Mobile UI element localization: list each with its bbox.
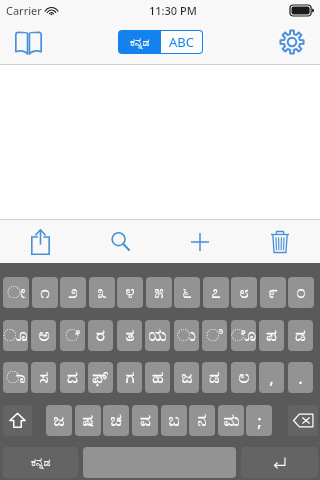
button[interactable]: ಚ [103, 405, 129, 436]
button[interactable]: ; [246, 405, 272, 436]
staticText: ಪ [266, 327, 277, 344]
button[interactable]: ೧ [32, 277, 58, 308]
staticText: ೬ [182, 284, 192, 301]
button[interactable]: ೊ [231, 320, 256, 351]
staticText: ಚ [110, 412, 122, 429]
staticText: ೊ [231, 327, 256, 344]
button[interactable]: ಷ [75, 405, 101, 436]
staticText: ೭ [211, 284, 221, 301]
staticText: . [298, 366, 303, 389]
button[interactable]: ಗ [117, 362, 142, 393]
button[interactable]: ೕ [3, 277, 29, 308]
button[interactable]: Dictionary [6, 20, 50, 64]
button[interactable]: ೪ [117, 277, 143, 308]
button[interactable]: ೬ [174, 277, 200, 308]
button[interactable]: ೆ [60, 320, 85, 351]
button[interactable]: ೦ [288, 277, 314, 308]
staticText: ಾ [6, 369, 26, 386]
staticText: Carrier [6, 3, 42, 18]
button[interactable]: ಫ್ [88, 362, 113, 393]
button[interactable]: ೨ [60, 277, 86, 308]
staticText: ಫ್ [92, 369, 109, 386]
button[interactable]: Search [80, 220, 160, 263]
button[interactable]: ೫ [146, 277, 172, 308]
button[interactable]: ರ [88, 320, 113, 351]
staticText: ಕನ್ನಡ [130, 37, 150, 48]
staticText: ಬ [168, 412, 180, 429]
staticText: ಮ [223, 412, 240, 429]
button[interactable]: Return [241, 447, 318, 478]
button[interactable]: ಲ [231, 362, 256, 393]
staticText: ು [177, 327, 196, 344]
staticText: ಜ [53, 412, 65, 429]
button[interactable]: Add [160, 220, 240, 263]
staticText: ರ [96, 327, 105, 344]
staticText: , [269, 366, 274, 389]
staticText: ಡ [295, 327, 306, 344]
staticText: ೯ [268, 284, 278, 301]
button[interactable]: ಕನ್ನಡ [119, 31, 161, 53]
staticText: ೮ [239, 284, 249, 301]
staticText: ಷ [82, 412, 94, 429]
button[interactable]: ಿ [202, 320, 227, 351]
button[interactable]: ವ [132, 405, 158, 436]
button[interactable]: Share [0, 220, 80, 263]
button[interactable]: ತ [117, 320, 142, 351]
staticText: ೂ [3, 327, 28, 344]
button[interactable]: ಅ [31, 320, 56, 351]
staticText: ವ [140, 412, 151, 429]
staticText: ೫ [154, 284, 164, 301]
staticText: ೕ [7, 284, 26, 301]
button[interactable]: Settings [270, 20, 314, 64]
staticText: ಿ [206, 327, 223, 344]
staticText: ಯ [148, 327, 167, 344]
button[interactable]: Delete [240, 220, 320, 263]
staticText: ಡ [209, 369, 220, 386]
staticText: ಗ [125, 369, 135, 386]
staticText: ಹ [152, 369, 164, 386]
button[interactable]: ೭ [203, 277, 229, 308]
button[interactable]: ಾ [3, 362, 28, 393]
staticText: ABC [169, 33, 194, 51]
staticText: ಲ [238, 369, 250, 386]
button[interactable]: , [259, 362, 284, 393]
button[interactable]: ಬ [161, 405, 187, 436]
button[interactable]: ದ [60, 362, 85, 393]
staticText: ದ [67, 369, 78, 386]
button[interactable]: ಡ [202, 362, 227, 393]
button[interactable]: ಜ [46, 405, 72, 436]
staticText: ೦ [296, 284, 306, 301]
staticText: ಕನ್ನಡ [31, 457, 51, 468]
button[interactable]: ಜ [174, 362, 199, 393]
button[interactable]: ಪ [259, 320, 284, 351]
staticText: 11:30 PM [149, 3, 197, 18]
button[interactable]: ಡ [288, 320, 313, 351]
staticText: ನ [197, 412, 207, 429]
staticText: ೨ [68, 284, 78, 301]
button[interactable]: Shift [3, 405, 32, 436]
button[interactable]: ೂ [3, 320, 28, 351]
staticText: ಸ [39, 369, 49, 386]
button[interactable]: ಯ [145, 320, 170, 351]
button[interactable]: . [288, 362, 313, 393]
button[interactable]: ಸ [31, 362, 56, 393]
button[interactable]: Backspace [288, 405, 318, 436]
button[interactable]: ೩ [89, 277, 115, 308]
button[interactable]: ABC [161, 31, 202, 53]
button[interactable]: ು [174, 320, 199, 351]
staticText: ೧ [40, 284, 50, 301]
staticText: ಜ [181, 369, 193, 386]
staticText: ೩ [97, 284, 107, 301]
button[interactable]: ೮ [231, 277, 257, 308]
staticText: ; [257, 409, 262, 432]
button[interactable]: ೯ [260, 277, 286, 308]
staticText: ೆ [65, 327, 80, 344]
button[interactable]: ನ [189, 405, 215, 436]
button[interactable]: ಮ [218, 405, 244, 436]
button[interactable]: ಕನ್ನಡ [3, 447, 78, 478]
staticText: ತ [125, 327, 135, 344]
button[interactable]: ಹ [145, 362, 170, 393]
staticText: ೪ [125, 284, 135, 301]
staticText: ಅ [38, 327, 50, 344]
